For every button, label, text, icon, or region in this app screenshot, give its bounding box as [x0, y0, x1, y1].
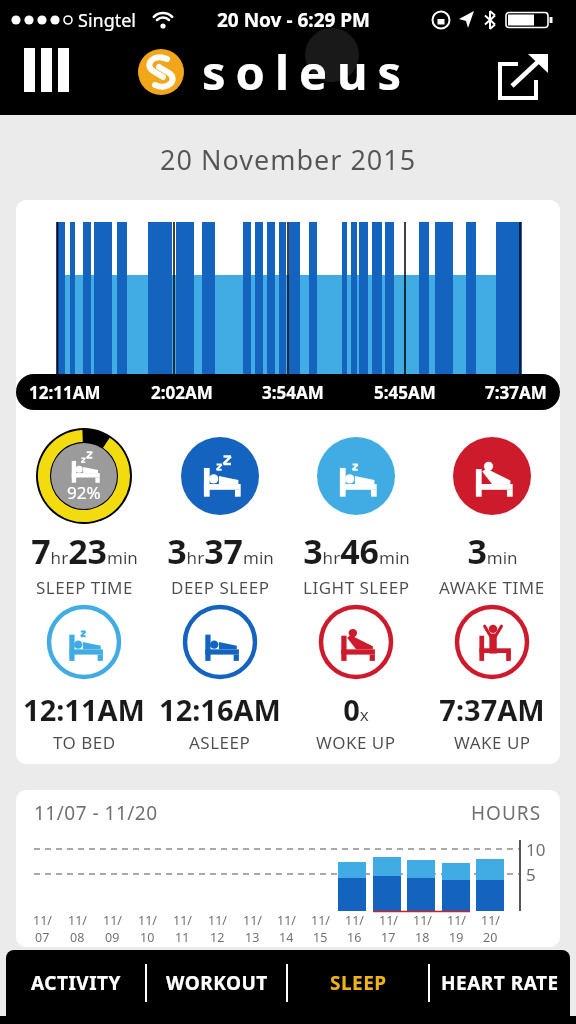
button[interactable]: WORKOUT — [147, 950, 286, 1016]
staticText: 11/ — [447, 912, 466, 929]
staticText: 12 — [210, 929, 225, 946]
staticText: 92% — [67, 481, 101, 504]
staticText: 11/ — [103, 912, 122, 929]
staticText: 10 — [526, 838, 546, 861]
staticText: 7hr23min — [31, 528, 138, 574]
staticText: 11/ — [173, 912, 192, 929]
staticText: 11/ — [33, 912, 52, 929]
staticText: 12:11AM — [23, 690, 145, 729]
staticText: 3hr37min — [167, 528, 274, 574]
staticText: 10 — [140, 929, 155, 946]
staticText: LIGHT SLEEP — [303, 576, 410, 599]
staticText: AWAKE TIME — [439, 576, 545, 599]
staticText: 20 — [483, 929, 498, 946]
staticText: 3:54AM — [262, 381, 324, 404]
staticText: 09 — [105, 929, 120, 946]
staticText: Singtel — [78, 8, 137, 33]
staticText: 11 — [175, 929, 190, 946]
staticText: 12:11AM — [29, 381, 101, 404]
staticText: 11/ — [379, 912, 398, 929]
staticText: 12:16AM — [159, 690, 281, 729]
staticText: 18 — [415, 929, 430, 946]
staticText: HOURS — [471, 800, 542, 826]
staticText: 11/ — [413, 912, 432, 929]
staticText: 5:45AM — [374, 381, 436, 404]
staticText: WAKE UP — [454, 731, 531, 754]
staticText: WORKOUT — [166, 970, 268, 996]
button[interactable]: SLEEP — [288, 950, 428, 1016]
staticText: 17 — [381, 929, 396, 946]
staticText: 13 — [245, 929, 260, 946]
staticText: 11/ — [277, 912, 296, 929]
staticText: 7:37AM — [485, 381, 547, 404]
staticText: 11/ — [481, 912, 500, 929]
staticText: 07 — [35, 929, 50, 946]
button[interactable] — [492, 54, 556, 106]
button[interactable] — [24, 48, 76, 94]
staticText: 16 — [347, 929, 362, 946]
staticText: ASLEEP — [189, 731, 251, 754]
staticText: HEART RATE — [441, 970, 559, 996]
staticText: 20 Nov - 6:29 PM — [217, 7, 371, 33]
staticText: 2:02AM — [151, 381, 213, 404]
staticText: SLEEP TIME — [36, 576, 133, 599]
staticText: 11/ — [311, 912, 330, 929]
button[interactable]: HEART RATE — [430, 950, 570, 1016]
staticText: WOKE UP — [316, 731, 396, 754]
staticText: 7:37AM — [439, 690, 545, 729]
staticText: 11/ — [345, 912, 364, 929]
staticText: 3hr46min — [303, 528, 410, 574]
staticText: TO BED — [53, 731, 116, 754]
staticText: 5 — [526, 863, 536, 886]
staticText: 11/ — [68, 912, 87, 929]
staticText: 11/ — [243, 912, 262, 929]
staticText: 08 — [70, 929, 85, 946]
staticText: 0x — [343, 690, 369, 729]
staticText: 11/ — [208, 912, 227, 929]
button[interactable]: ACTIVITY — [6, 950, 145, 1016]
staticText: 15 — [313, 929, 328, 946]
staticText: 11/ — [138, 912, 157, 929]
staticText: SLEEP — [330, 970, 387, 996]
staticText: 20 November 2015 — [160, 141, 417, 178]
staticText: 11/07 - 11/20 — [34, 800, 158, 826]
staticText: 3min — [467, 528, 518, 574]
staticText: 19 — [449, 929, 464, 946]
staticText: soleus — [202, 40, 412, 104]
staticText: 14 — [279, 929, 294, 946]
staticText: DEEP SLEEP — [171, 576, 270, 599]
staticText: ACTIVITY — [31, 970, 121, 996]
